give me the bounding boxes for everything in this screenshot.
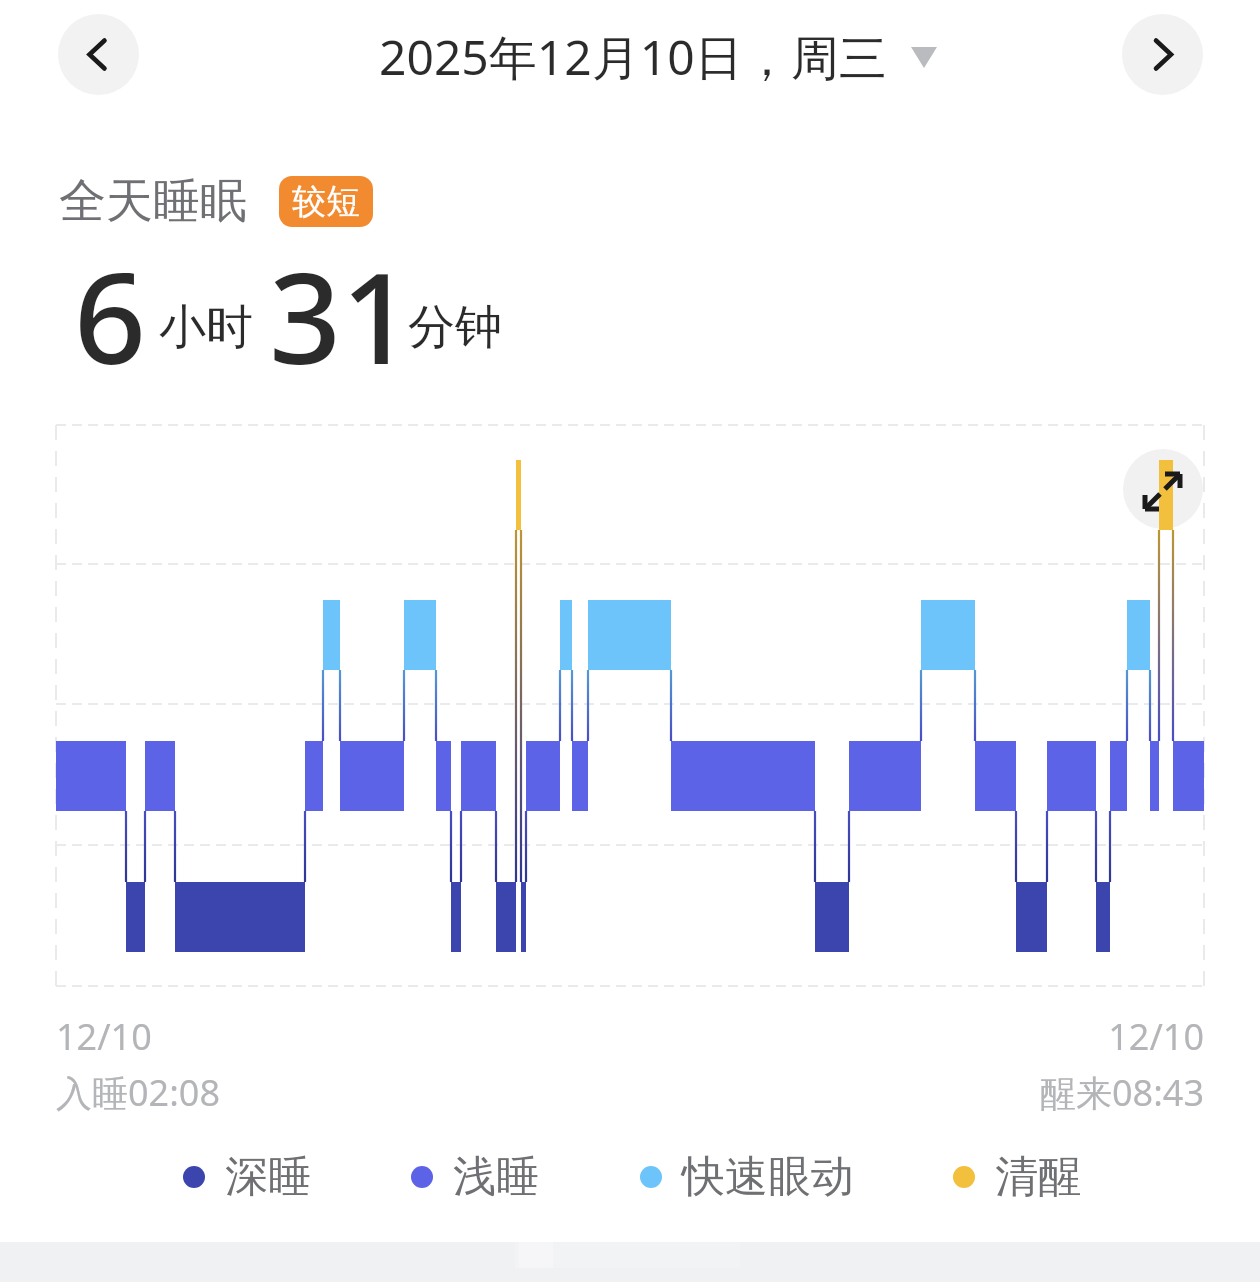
staticText: 较短: [292, 180, 360, 223]
button[interactable]: 深睡: [183, 1150, 311, 1204]
staticText: 小时: [159, 298, 253, 357]
button[interactable]: Next day: [1122, 14, 1203, 95]
staticText: 12/10: [900, 1012, 1204, 1061]
staticText: 深睡: [225, 1150, 311, 1204]
staticText: 醒来08:43: [900, 1068, 1204, 1117]
staticText: 清醒: [995, 1150, 1081, 1204]
staticText: 6: [74, 229, 147, 401]
button[interactable]: 快速眼动: [640, 1150, 854, 1204]
button[interactable]: 浅睡: [411, 1150, 539, 1204]
staticText: 31: [269, 229, 414, 401]
button[interactable]: 清醒: [953, 1150, 1081, 1204]
button[interactable]: 2025年12月10日，周三: [379, 14, 937, 96]
staticText: 分钟: [408, 298, 502, 357]
staticText: 全天睡眠: [59, 172, 247, 231]
staticText: 2025年12月10日，周三: [379, 24, 887, 90]
staticText: 浅睡: [453, 1150, 539, 1204]
button[interactable]: Previous day: [58, 14, 139, 95]
button[interactable]: Expand chart: [1123, 449, 1203, 529]
staticText: 入睡02:08: [56, 1068, 221, 1117]
staticText: 快速眼动: [682, 1150, 854, 1204]
staticText: 12/10: [56, 1012, 152, 1061]
